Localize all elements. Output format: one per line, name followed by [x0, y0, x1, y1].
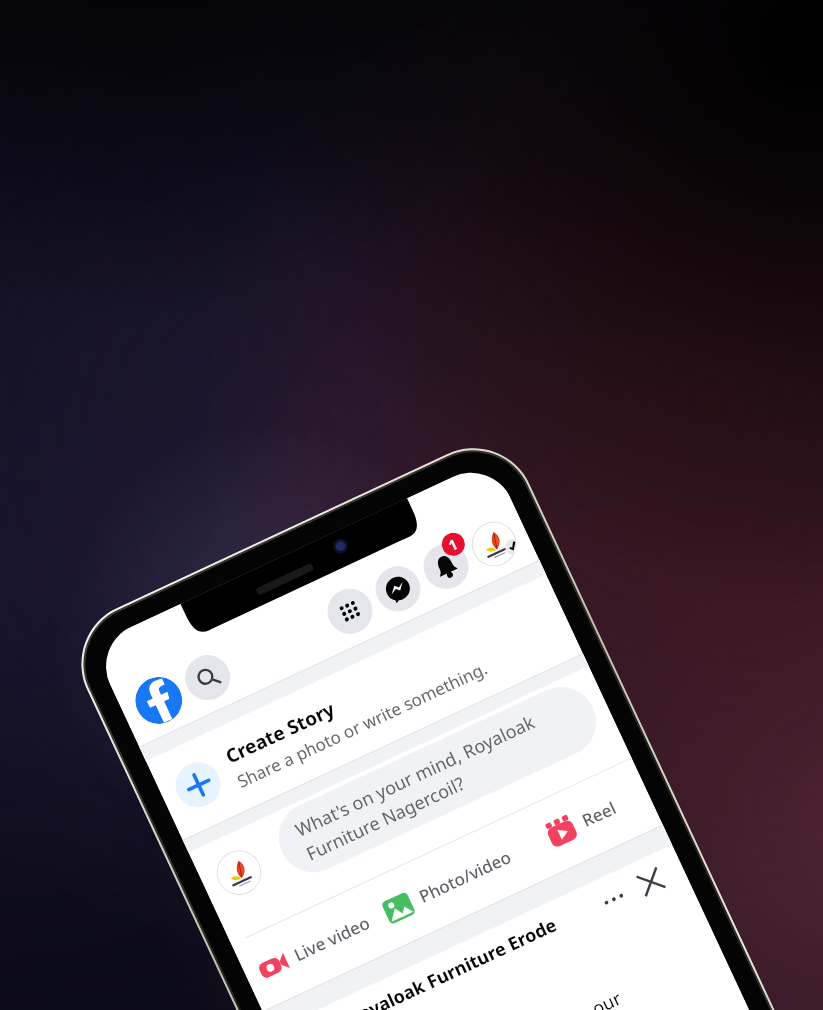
- button[interactable]: More options: [591, 877, 636, 922]
- button[interactable]: Messenger: [368, 559, 428, 619]
- staticText: Share a photo or write something.: [233, 656, 491, 793]
- button[interactable]: Menu: [320, 581, 380, 641]
- button[interactable]: What's on your mind, Royaloak Furniture …: [267, 675, 607, 884]
- button[interactable]: Facebook: [127, 669, 190, 732]
- button[interactable]: Close: [628, 859, 674, 904]
- button[interactable]: Your profile: [209, 843, 269, 902]
- button[interactable]: Create Story: [146, 574, 583, 840]
- staticText: Royaloak Furniture Erode (Erode, Tamil N…: [344, 903, 601, 1010]
- button[interactable]: Profile: [464, 514, 524, 574]
- staticText: Step into Royaloak Erode—where our story…: [329, 986, 637, 1010]
- button[interactable]: Search: [178, 648, 238, 707]
- staticText: Create Story: [221, 696, 339, 769]
- staticText: Live video: [290, 911, 374, 966]
- staticText: Photo/video: [415, 845, 515, 908]
- staticText: Reel: [578, 796, 620, 832]
- staticText: What's on your mind, Royaloak Furniture …: [291, 709, 550, 866]
- button[interactable]: Notifications: [416, 537, 476, 596]
- staticText: 1: [445, 534, 461, 555]
- button[interactable]: Live video: [231, 883, 396, 1010]
- button[interactable]: Reel: [499, 758, 663, 887]
- button[interactable]: Photo/video: [366, 820, 530, 949]
